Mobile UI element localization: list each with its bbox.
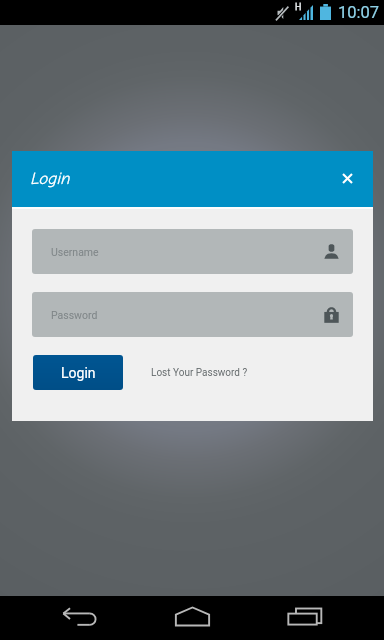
staticText: H — [295, 2, 302, 13]
button[interactable]: Close — [332, 164, 362, 194]
staticText: Username — [51, 246, 99, 258]
staticText: Lost Your Password ? — [151, 367, 248, 379]
button[interactable]: Recent apps — [256, 596, 384, 640]
button[interactable]: Home — [128, 596, 256, 640]
button[interactable]: Password — [32, 292, 353, 337]
staticText: Login — [30, 169, 70, 189]
staticText: Login — [61, 365, 96, 381]
button[interactable]: Username — [32, 229, 353, 274]
staticText: 10:07 — [338, 3, 380, 22]
button[interactable]: Login — [33, 355, 123, 390]
button[interactable]: Back — [0, 596, 128, 640]
button[interactable]: Lost Your Password ? — [151, 367, 248, 379]
staticText: Password — [51, 309, 98, 321]
